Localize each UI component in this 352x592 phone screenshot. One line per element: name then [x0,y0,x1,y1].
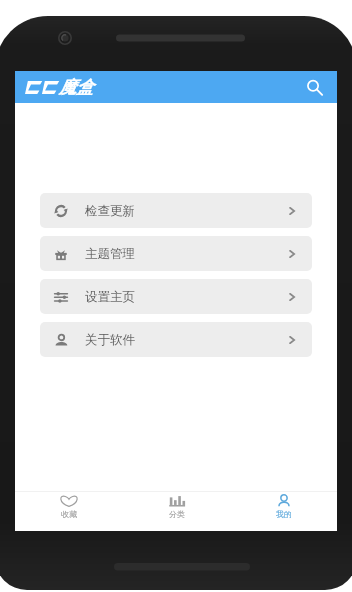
button[interactable]: 主题管理 [40,236,312,271]
staticText: 收藏 [61,509,77,519]
staticText: 我的 [276,509,292,519]
button[interactable]: 检查更新 [40,193,312,228]
staticText: 魔盒 [59,77,93,98]
staticText: 主题管理 [85,246,135,262]
button[interactable]: 收藏 [15,492,123,531]
button[interactable]: Search [302,75,326,99]
button[interactable]: 关于软件 [40,322,312,357]
button[interactable]: 设置主页 [40,279,312,314]
staticText: 设置主页 [85,289,135,305]
button[interactable]: 分类 [123,492,230,531]
staticText: 检查更新 [85,203,135,219]
staticText: 分类 [169,509,185,519]
staticText: 关于软件 [85,332,135,348]
button[interactable]: 我的 [230,492,337,531]
